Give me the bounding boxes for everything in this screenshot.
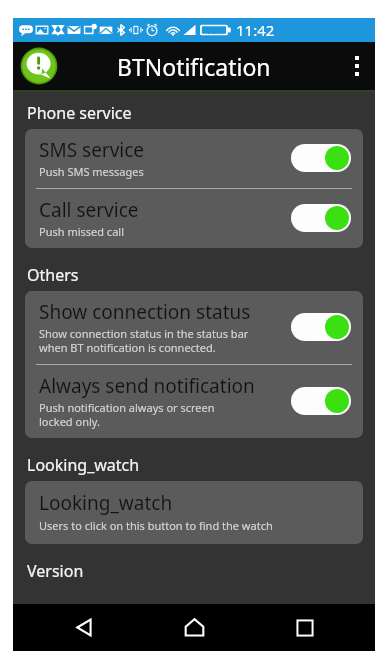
staticText: Looking_watch <box>39 490 173 516</box>
button[interactable]: Toggle switch, on <box>291 387 351 415</box>
staticText: Call service <box>39 197 139 223</box>
button[interactable]: More options <box>339 42 375 90</box>
button[interactable]: Always send notification <box>25 365 363 438</box>
button[interactable]: Home <box>154 604 234 651</box>
button[interactable]: Toggle switch, on <box>291 144 351 172</box>
button[interactable]: BTNotification app icon <box>19 46 59 86</box>
staticText: SMS service <box>39 137 145 163</box>
staticText: Version <box>27 560 84 582</box>
staticText: Show connection status in the status bar… <box>39 326 249 355</box>
staticText: Push SMS messages <box>39 164 144 179</box>
button[interactable]: Show connection status <box>25 291 363 364</box>
button[interactable]: Recent apps <box>265 604 345 651</box>
staticText: Push notification always or screen locke… <box>39 400 215 429</box>
staticText: 76% <box>207 25 224 36</box>
staticText: Show connection status <box>39 299 251 325</box>
button[interactable]: Call service <box>25 189 363 248</box>
staticText: Always send notification <box>39 373 255 399</box>
button[interactable]: SMS service <box>25 129 363 188</box>
staticText: Push missed call <box>39 224 124 239</box>
staticText: Looking_watch <box>27 454 140 476</box>
staticText: Phone service <box>27 102 132 124</box>
staticText: Others <box>27 264 79 286</box>
staticText: BTNotification <box>117 51 271 82</box>
button[interactable]: Toggle switch, on <box>291 204 351 232</box>
button[interactable]: Back <box>44 604 124 651</box>
staticText: Users to click on this button to find th… <box>39 518 273 533</box>
staticText: 11:42 <box>236 20 275 40</box>
button[interactable]: Toggle switch, on <box>291 313 351 341</box>
button[interactable]: Looking_watch <box>25 481 363 544</box>
